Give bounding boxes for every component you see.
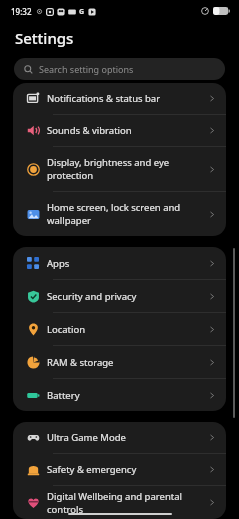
staticText: Settings — [15, 28, 74, 48]
staticText: Location — [47, 323, 207, 336]
button[interactable]: Ultra Game Mode — [13, 422, 226, 453]
button[interactable]: Digital Wellbeing and parental controls — [13, 486, 226, 519]
button[interactable]: Home screen, lock screen and wallpaper — [13, 192, 226, 236]
button[interactable]: Security and privacy — [13, 280, 226, 312]
button[interactable]: Safety & emergency — [13, 454, 226, 485]
staticText: Digital Wellbeing and parental controls — [47, 490, 207, 516]
button[interactable]: Sounds & vibration — [13, 115, 226, 146]
staticText: Apps — [47, 257, 207, 270]
staticText: 19:32 — [11, 6, 32, 17]
staticText: Security and privacy — [47, 290, 207, 303]
staticText: Sounds & vibration — [47, 124, 207, 137]
staticText: Notifications & status bar — [47, 92, 207, 105]
button[interactable]: Battery — [13, 379, 226, 411]
staticText: G — [79, 7, 85, 17]
staticText: Search setting options — [39, 63, 134, 75]
button[interactable]: Notifications & status bar — [13, 83, 226, 114]
button[interactable]: Display, brightness and eye protection — [13, 147, 226, 191]
staticText: Home screen, lock screen and wallpaper — [47, 201, 207, 227]
staticText: Ultra Game Mode — [47, 431, 207, 444]
button[interactable]: RAM & storage — [13, 346, 226, 378]
staticText: RAM & storage — [47, 356, 207, 369]
staticText: Battery — [47, 389, 207, 402]
staticText: Safety & emergency — [47, 463, 207, 476]
staticText: Display, brightness and eye protection — [47, 156, 207, 182]
button[interactable]: Apps — [13, 247, 226, 279]
button[interactable]: Search setting options — [14, 58, 225, 80]
button[interactable]: Location — [13, 313, 226, 345]
